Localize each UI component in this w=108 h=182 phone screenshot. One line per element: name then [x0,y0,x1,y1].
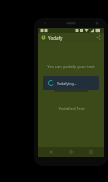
staticText: Yodafied Text [58,106,85,112]
staticText: Yodafying... [57,81,77,86]
staticText: Yes can yodafy your text [47,64,95,70]
button[interactable]: Recent apps [84,147,98,157]
button[interactable]: Share [94,33,103,42]
button[interactable]: Home [64,147,78,157]
button[interactable]: Yodafying... [43,76,99,90]
button[interactable]: Back [44,147,58,157]
staticText: Yodafy [48,35,63,41]
